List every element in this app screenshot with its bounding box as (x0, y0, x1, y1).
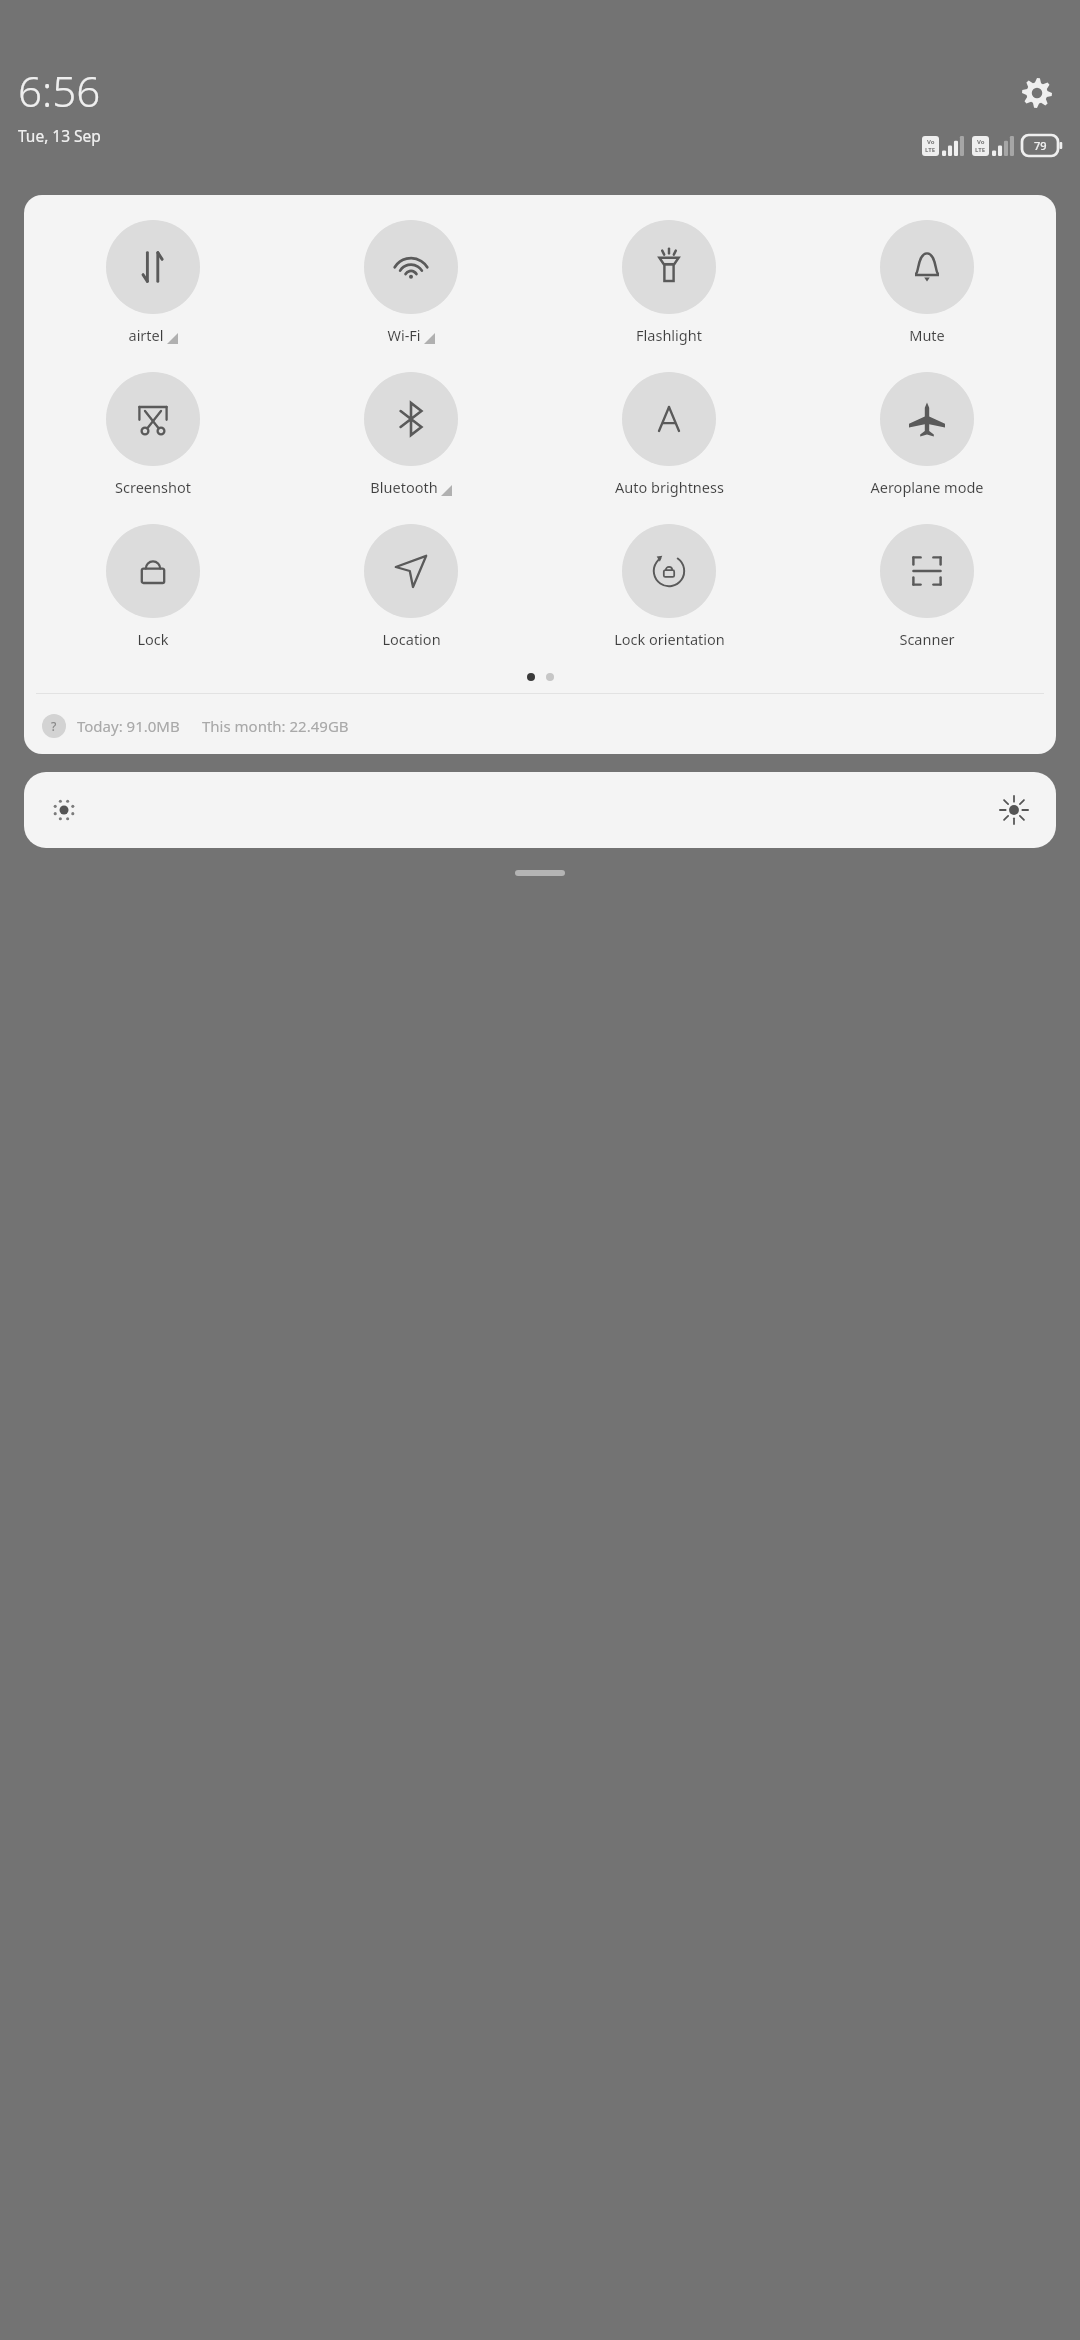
staticText: Aeroplane mode (870, 477, 984, 497)
staticText: Auto brightness (615, 477, 724, 497)
staticText: Lock (137, 629, 169, 649)
staticText: LTE (925, 146, 936, 154)
staticText: Lock orientation (614, 629, 725, 649)
button[interactable]: Lock (24, 524, 282, 649)
staticText: Scanner (899, 629, 955, 649)
button[interactable]: Bluetooth (282, 372, 540, 497)
staticText: ? (51, 718, 57, 734)
button[interactable]: Screenshot (24, 372, 282, 497)
staticText: LTE (975, 146, 986, 154)
staticText: 79 (1034, 138, 1047, 153)
staticText: Flashlight (636, 325, 702, 345)
button[interactable]: Mute (798, 220, 1056, 345)
staticText: Today: 91.0MB (77, 716, 180, 736)
staticText: Vo (977, 138, 985, 146)
button[interactable]: Brightness slider (24, 772, 1056, 848)
staticText: Location (382, 629, 441, 649)
staticText: Tue, 13 Sep (18, 125, 101, 146)
staticText: Bluetooth (370, 477, 438, 497)
button[interactable]: Lock orientation (540, 524, 798, 649)
button[interactable]: Wi-Fi (282, 220, 540, 345)
button[interactable]: airtel (24, 220, 282, 345)
button[interactable]: Auto brightness (540, 372, 798, 497)
button[interactable]: Aeroplane mode (798, 372, 1056, 497)
button[interactable]: Scanner (798, 524, 1056, 649)
staticText: Mute (909, 325, 945, 345)
staticText: Screenshot (115, 477, 191, 497)
staticText: 6:56 (18, 62, 101, 119)
button[interactable]: Settings (1014, 70, 1060, 116)
button[interactable]: Location (282, 524, 540, 649)
staticText: Vo (927, 138, 935, 146)
button[interactable]: Flashlight (540, 220, 798, 345)
staticText: airtel (128, 325, 164, 345)
staticText: Wi-Fi (387, 325, 421, 345)
button[interactable]: ? (42, 706, 1056, 746)
staticText: This month: 22.49GB (202, 716, 349, 736)
